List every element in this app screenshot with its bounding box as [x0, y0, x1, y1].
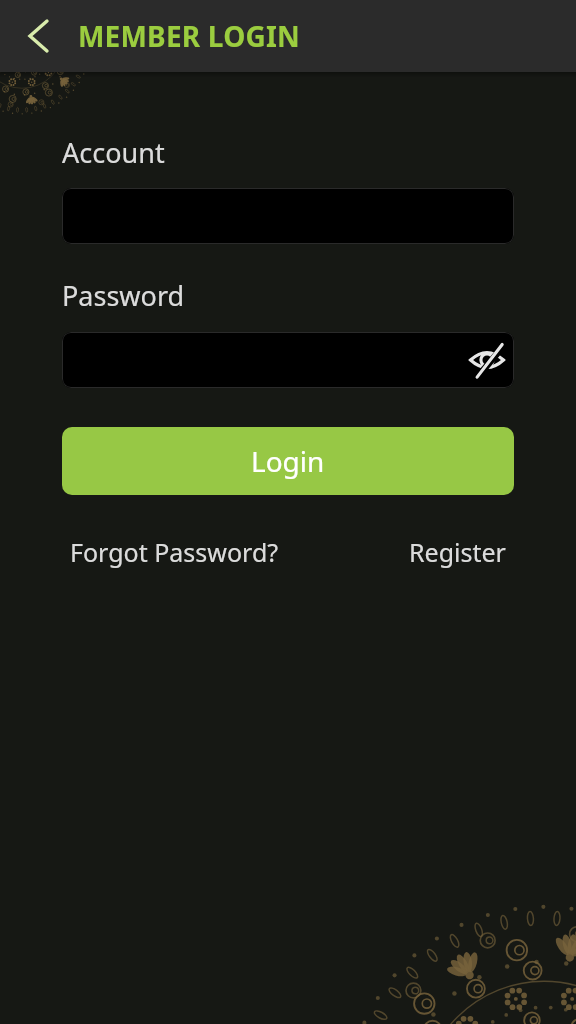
staticText: Login: [251, 442, 325, 480]
staticText: Register: [409, 535, 506, 569]
button[interactable]: Register: [409, 535, 506, 569]
staticText: Forgot Password?: [70, 535, 279, 569]
button[interactable]: Forgot Password?: [70, 535, 279, 569]
button[interactable]: Login: [62, 427, 514, 495]
staticText: MEMBER LOGIN: [78, 17, 301, 55]
button[interactable]: [62, 332, 514, 388]
staticText: Password: [62, 277, 185, 314]
staticText: Account: [62, 134, 165, 171]
button[interactable]: [0, 0, 78, 72]
button[interactable]: [465, 338, 509, 382]
button[interactable]: [62, 188, 514, 244]
